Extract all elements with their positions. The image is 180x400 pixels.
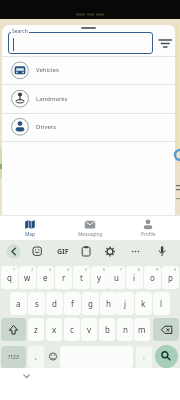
button[interactable]: Vehicles [2, 56, 175, 84]
button[interactable] [28, 243, 46, 261]
staticText: 1 [13, 267, 16, 272]
staticText: ?123 [8, 354, 19, 361]
button[interactable]: p [162, 266, 179, 289]
button[interactable] [155, 345, 178, 368]
button[interactable]: q [1, 266, 18, 289]
button[interactable]: ?123 [1, 346, 26, 368]
button[interactable]: j [117, 292, 134, 315]
button[interactable] [127, 243, 145, 261]
button[interactable]: , [28, 346, 44, 368]
staticText: . [143, 352, 145, 362]
button[interactable]: x [46, 318, 62, 341]
staticText: f [71, 298, 74, 309]
button[interactable] [155, 35, 175, 51]
staticText: , [35, 352, 37, 362]
button[interactable]: Landmarks [2, 85, 175, 113]
button[interactable] [5, 243, 23, 261]
staticText: i [133, 272, 136, 283]
button[interactable]: r [55, 266, 72, 289]
staticText: 5 [85, 267, 88, 272]
button[interactable]: f [64, 292, 81, 315]
staticText: g [88, 298, 93, 309]
button[interactable]: w [19, 266, 36, 289]
button[interactable]: y [91, 266, 108, 289]
staticText: Drivers [36, 123, 57, 131]
staticText: s [35, 298, 39, 309]
staticText: 8 [138, 267, 141, 272]
button[interactable] [77, 243, 95, 261]
staticText: z [34, 324, 38, 335]
staticText: h [106, 298, 111, 309]
staticText: a [16, 298, 21, 309]
button[interactable]: n [117, 318, 133, 341]
staticText: 6 [103, 267, 106, 272]
button[interactable]: b [99, 318, 115, 341]
button[interactable]: t [73, 266, 90, 289]
staticText: 2 [31, 267, 34, 272]
staticText: y [97, 272, 102, 283]
button[interactable] [153, 318, 179, 341]
button[interactable]: l [153, 292, 170, 315]
button[interactable]: v [81, 318, 97, 341]
staticText: 9 [156, 267, 159, 272]
staticText: 3 [49, 267, 52, 272]
staticText: k [141, 298, 146, 309]
staticText: l [160, 298, 163, 309]
button[interactable]: z [28, 318, 44, 341]
button[interactable]: Drivers [2, 113, 175, 141]
staticText: Vehicles [36, 66, 59, 74]
button[interactable]: g [82, 292, 99, 315]
button[interactable] [46, 347, 62, 366]
staticText: 7 [120, 267, 123, 272]
button[interactable] [153, 243, 171, 261]
staticText: c [70, 324, 74, 335]
button[interactable]: . [136, 346, 152, 368]
staticText: 0 [174, 267, 177, 272]
button[interactable]: k [135, 292, 152, 315]
button[interactable]: u [108, 266, 125, 289]
staticText: n [123, 324, 128, 335]
staticText: x [52, 324, 57, 335]
button[interactable] [9, 215, 51, 240]
staticText: m [138, 324, 146, 335]
button[interactable]: h [100, 292, 117, 315]
staticText: j [124, 298, 127, 309]
button[interactable]: c [64, 318, 80, 341]
staticText: d [52, 298, 57, 309]
button[interactable]: a [10, 292, 27, 315]
button[interactable]: e [37, 266, 54, 289]
staticText: q [7, 272, 12, 283]
staticText: t [80, 272, 83, 283]
button[interactable] [1, 318, 26, 341]
button[interactable] [127, 215, 169, 240]
button[interactable]: i [126, 266, 143, 289]
staticText: Messaging [78, 231, 103, 238]
button[interactable]: m [134, 318, 150, 341]
staticText: GIF [57, 247, 69, 257]
staticText: o [150, 272, 155, 283]
button[interactable] [54, 243, 72, 261]
button[interactable] [101, 243, 119, 261]
button[interactable]: s [28, 292, 45, 315]
button[interactable]: d [46, 292, 63, 315]
staticText: p [168, 272, 173, 283]
staticText: Landmarks [36, 95, 68, 103]
button[interactable] [8, 32, 153, 54]
staticText: e [43, 272, 48, 283]
button[interactable]: o [144, 266, 161, 289]
staticText: Search [12, 28, 28, 35]
staticText: 4 [67, 267, 70, 272]
button[interactable] [69, 215, 111, 240]
staticText: u [114, 272, 119, 283]
staticText: r [62, 272, 66, 283]
staticText: Profile [141, 231, 156, 238]
staticText: w [24, 272, 31, 283]
staticText: Map [25, 231, 35, 238]
staticText: v [87, 324, 92, 335]
staticText: b [105, 324, 110, 335]
